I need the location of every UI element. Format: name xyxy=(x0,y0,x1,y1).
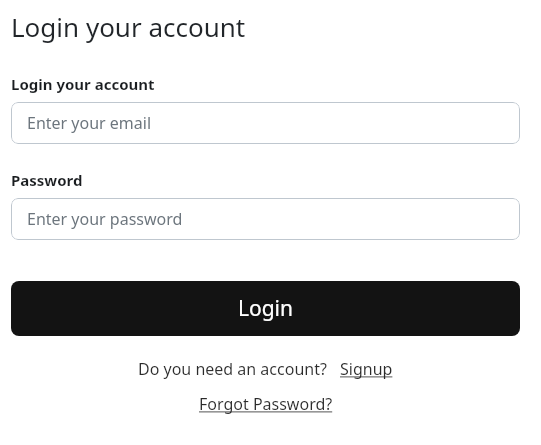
staticText: Enter your password xyxy=(27,208,183,230)
staticText: Login your account xyxy=(11,9,246,44)
staticText: Login xyxy=(238,294,294,323)
staticText: Forgot Password? xyxy=(199,393,333,415)
staticText: Password xyxy=(11,170,83,190)
button[interactable]: Enter your password xyxy=(11,198,520,240)
staticText: Signup xyxy=(340,358,393,380)
button[interactable]: Enter your email xyxy=(11,102,520,144)
staticText: Do you need an account? xyxy=(138,358,327,380)
button[interactable]: Login xyxy=(11,281,520,336)
button[interactable]: Forgot Password? xyxy=(199,393,333,415)
staticText: Enter your email xyxy=(27,112,152,134)
staticText: Login your account xyxy=(11,74,155,94)
button[interactable]: Signup xyxy=(340,358,393,380)
